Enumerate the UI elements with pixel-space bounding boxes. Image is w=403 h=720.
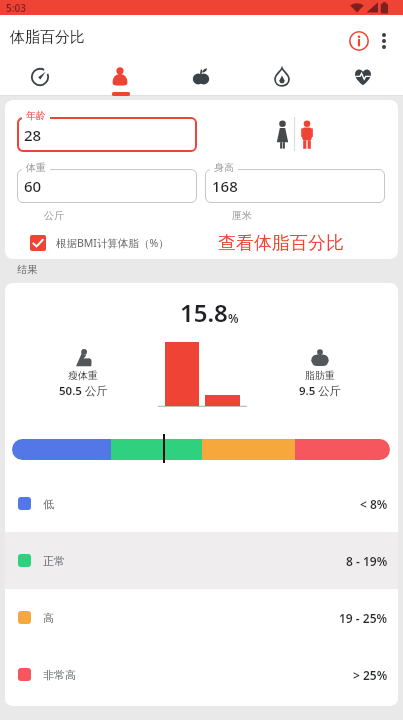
button[interactable] bbox=[267, 113, 297, 155]
button[interactable] bbox=[241, 57, 322, 96]
staticText: 正常 bbox=[43, 554, 65, 568]
button[interactable]: 非常高 bbox=[5, 646, 398, 703]
staticText: 查看体脂百分比 bbox=[218, 232, 344, 255]
button[interactable] bbox=[344, 26, 373, 55]
button[interactable] bbox=[372, 26, 396, 55]
staticText: 50.5 公斤 bbox=[59, 383, 108, 399]
staticText: 瘦体重 bbox=[68, 369, 98, 382]
staticText: 身高 bbox=[214, 161, 234, 174]
staticText: 高 bbox=[43, 611, 54, 625]
button[interactable] bbox=[80, 57, 160, 96]
button[interactable]: 查看体脂百分比 bbox=[198, 228, 363, 258]
staticText: 年龄 bbox=[26, 109, 46, 122]
staticText: 体脂百分比 bbox=[10, 28, 85, 47]
staticText: 脂肪重 bbox=[305, 369, 335, 382]
staticText: < 8% bbox=[360, 496, 388, 512]
button[interactable]: 正常 bbox=[5, 532, 398, 589]
staticText: 60 bbox=[24, 176, 42, 196]
staticText: % bbox=[228, 310, 239, 326]
staticText: 168 bbox=[212, 176, 238, 196]
button[interactable]: 高 bbox=[5, 589, 398, 646]
staticText: 15.8 bbox=[180, 296, 228, 329]
staticText: 厘米 bbox=[232, 209, 252, 222]
staticText: 5:03 bbox=[6, 1, 26, 15]
staticText: 9.5 公斤 bbox=[299, 383, 342, 399]
button[interactable]: 低 bbox=[5, 475, 398, 532]
staticText: 公斤 bbox=[44, 209, 64, 222]
staticText: > 25% bbox=[353, 667, 388, 683]
staticText: 19 - 25% bbox=[339, 610, 388, 626]
staticText: 28 bbox=[24, 125, 42, 145]
staticText: 非常高 bbox=[43, 668, 76, 682]
staticText: 低 bbox=[43, 497, 54, 511]
staticText: 根据BMI计算体脂（%） bbox=[56, 236, 169, 250]
staticText: 结果 bbox=[17, 263, 37, 276]
button[interactable]: 根据BMI计算体脂（%） bbox=[22, 228, 169, 258]
button[interactable] bbox=[322, 57, 403, 96]
button[interactable] bbox=[0, 57, 80, 96]
button[interactable] bbox=[299, 113, 329, 155]
staticText: 8 - 19% bbox=[346, 553, 388, 569]
button[interactable]: 28 bbox=[17, 117, 197, 152]
button[interactable]: 60 bbox=[17, 169, 197, 203]
button[interactable] bbox=[160, 57, 241, 96]
staticText: 体重 bbox=[26, 161, 46, 174]
button[interactable]: 168 bbox=[205, 169, 385, 203]
